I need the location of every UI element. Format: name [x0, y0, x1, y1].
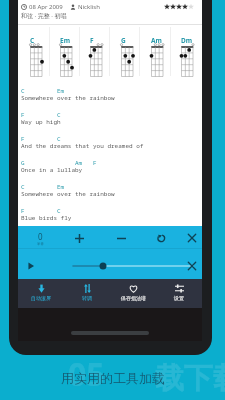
staticText: 自动滚屏	[31, 295, 51, 301]
staticText: 和弦 · 完整 · 初唱	[21, 12, 67, 20]
staticText: And the dreams that you dreamed of	[21, 142, 144, 150]
button[interactable]: Close autoscroll	[183, 257, 201, 275]
button[interactable]: 保存指法谱	[110, 279, 156, 308]
staticText: Em	[60, 36, 70, 45]
staticText: 转调	[82, 295, 92, 301]
staticText: 半音	[37, 242, 44, 246]
button[interactable]: Transpose up	[70, 229, 88, 247]
staticText: Nicklish	[78, 3, 100, 11]
staticText: Dm	[181, 36, 193, 45]
staticText: 载下载	[155, 360, 225, 397]
staticText: F C	[21, 135, 61, 143]
button[interactable]: 转调	[64, 279, 110, 308]
staticText: Somewhere over the rainbow	[21, 190, 115, 198]
button[interactable]: Transpose down	[112, 229, 130, 247]
staticText: F C	[21, 207, 61, 215]
staticText: Blue birds fly	[21, 214, 72, 222]
staticText: C	[30, 36, 35, 45]
button[interactable]: Play	[22, 257, 40, 275]
staticText: G	[121, 36, 126, 45]
staticText: Somewhere over the rainbow	[21, 94, 115, 102]
staticText: G Am F	[21, 159, 97, 167]
button[interactable]: 设置	[156, 279, 202, 308]
staticText: Once in a lullaby	[21, 166, 83, 174]
button[interactable]: Close transpose	[183, 229, 201, 247]
button[interactable]: Reset transpose	[152, 229, 170, 247]
staticText: Am	[151, 36, 162, 45]
staticText: 设置	[174, 295, 184, 301]
staticText: F	[90, 36, 94, 45]
staticText: C Em	[21, 87, 65, 95]
staticText: C Em	[21, 183, 65, 191]
button[interactable]: 自动滚屏	[18, 279, 64, 308]
staticText: 05	[68, 352, 105, 396]
staticText: Way up high	[21, 118, 61, 126]
staticText: 用实用的工具加载	[61, 370, 165, 386]
staticText: F C	[21, 111, 61, 119]
staticText: 0	[38, 231, 43, 242]
staticText: 08 Apr 2009	[29, 3, 63, 11]
staticText: 保存指法谱	[121, 295, 146, 301]
